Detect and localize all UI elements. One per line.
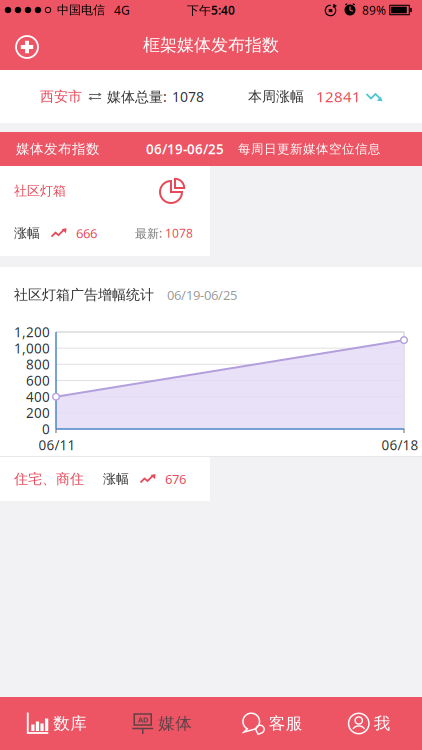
staticText: 中国电信	[57, 2, 105, 17]
staticText: 800	[26, 355, 50, 373]
staticText: 89%	[362, 2, 386, 18]
staticText: 06/19-06/25	[146, 140, 224, 158]
staticText: 666	[76, 224, 97, 242]
staticText: 社区灯箱	[14, 183, 66, 199]
staticText: 1,200	[14, 323, 50, 341]
staticText: 1,000	[14, 339, 50, 357]
staticText: 4G	[114, 2, 130, 18]
staticText: 媒体总量:	[107, 87, 167, 106]
button[interactable]: 客服	[211, 697, 316, 750]
staticText: 下午5:40	[187, 2, 235, 18]
button[interactable]: 社区灯箱	[0, 166, 210, 256]
staticText: AD	[138, 714, 148, 725]
staticText: 我	[374, 713, 391, 734]
staticText: 客服	[269, 713, 303, 734]
staticText: 400	[26, 387, 50, 406]
staticText: 框架媒体发布指数	[143, 34, 279, 56]
staticText: 676	[165, 470, 186, 488]
staticText: 涨幅	[14, 225, 40, 241]
staticText: 数库	[53, 713, 87, 734]
staticText: 西安市	[40, 88, 82, 105]
button[interactable]: 住宅、商住	[0, 457, 210, 501]
staticText: 1078	[165, 225, 193, 241]
staticText: 600	[26, 371, 50, 390]
staticText: 1078	[172, 87, 204, 106]
button[interactable]: Add	[0, 31, 39, 59]
button[interactable]: 我	[316, 697, 422, 750]
staticText: 媒体	[158, 713, 192, 734]
staticText: 200	[26, 404, 50, 422]
staticText: 06/19-06/25	[167, 286, 237, 304]
staticText: 06/18	[381, 436, 418, 454]
staticText: 12841	[316, 86, 361, 107]
staticText: 本周涨幅	[248, 88, 304, 105]
button[interactable]: AD	[105, 697, 211, 750]
button[interactable]: 西安市	[40, 88, 102, 105]
staticText: 媒体发布指数	[16, 140, 100, 157]
button[interactable]: 数库	[0, 697, 105, 750]
staticText: 社区灯箱广告增幅统计	[14, 286, 154, 304]
staticText: 涨幅	[103, 471, 129, 487]
staticText: 住宅、商住	[14, 470, 84, 488]
staticText: 最新:	[135, 225, 162, 241]
staticText: 每周日更新媒体空位信息	[238, 141, 381, 157]
staticText: 06/11	[38, 436, 75, 454]
staticText: 0	[42, 420, 50, 438]
